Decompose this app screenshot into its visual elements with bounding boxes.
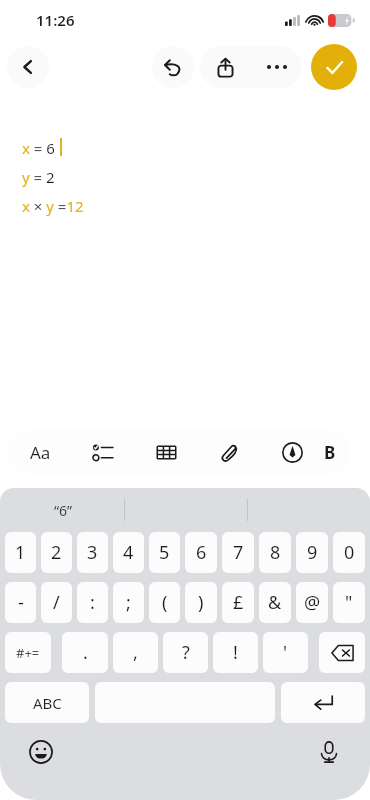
button[interactable]: ! (213, 632, 258, 673)
button[interactable]: Bold (324, 430, 350, 474)
button[interactable]: 0 (333, 532, 365, 573)
button[interactable]: Share (200, 46, 251, 88)
staticText: : (90, 590, 95, 615)
button[interactable]: , (113, 632, 158, 673)
staticText: 5 (159, 540, 170, 565)
staticText: “6” (54, 501, 73, 520)
staticText: ? (182, 640, 190, 665)
staticText: 9 (307, 540, 318, 565)
button[interactable]: Table (135, 430, 198, 474)
staticText: x = 6 (22, 138, 55, 158)
staticText: 3 (87, 540, 98, 565)
button[interactable]: Back (7, 46, 49, 88)
staticText: #+= (16, 644, 40, 662)
button[interactable]: & (259, 582, 291, 623)
staticText: 4 (123, 540, 134, 565)
button[interactable]: More options (251, 46, 302, 88)
staticText: / (53, 590, 60, 615)
button[interactable]: 3 (77, 532, 108, 573)
button[interactable]: 6 (185, 532, 217, 573)
staticText: ) (198, 590, 204, 615)
staticText: ! (233, 640, 238, 665)
staticText: y = 2 (22, 167, 55, 187)
button[interactable]: . (62, 632, 108, 673)
button[interactable]: 5 (149, 532, 180, 573)
button[interactable]: ; (113, 582, 144, 623)
button[interactable]: " (333, 582, 365, 623)
button[interactable]: Emoji (26, 737, 56, 767)
button[interactable]: ' (263, 632, 308, 673)
button[interactable]: ? (163, 632, 208, 673)
staticText: ; (126, 590, 131, 615)
staticText: 2 (51, 540, 62, 565)
button[interactable]: Attach (198, 430, 261, 474)
button[interactable]: - (5, 582, 36, 623)
button[interactable]: 2 (41, 532, 72, 573)
staticText: 0 (344, 540, 355, 565)
staticText: @ (304, 590, 321, 615)
button[interactable]: 4 (113, 532, 144, 573)
staticText: Aa (30, 441, 51, 464)
button[interactable]: Delete (319, 632, 365, 673)
staticText: & (268, 590, 282, 615)
staticText: B (324, 441, 336, 464)
staticText: £ (233, 590, 244, 615)
button[interactable]: Dictation (314, 737, 344, 767)
button[interactable]: 9 (296, 532, 328, 573)
button[interactable]: / (41, 582, 72, 623)
button[interactable]: Done (311, 44, 357, 90)
button[interactable]: £ (222, 582, 254, 623)
staticText: 11:26 (36, 10, 75, 30)
staticText: 6 (196, 540, 207, 565)
button[interactable]: Checklist (72, 430, 135, 474)
staticText: 8 (270, 540, 281, 565)
button[interactable]: : (77, 582, 108, 623)
button[interactable]: ( (149, 582, 180, 623)
staticText: - (18, 590, 24, 615)
button[interactable]: ) (185, 582, 217, 623)
button[interactable]: 7 (222, 532, 254, 573)
button[interactable]: @ (296, 582, 328, 623)
button[interactable]: Undo (152, 46, 194, 88)
button[interactable]: Return (281, 682, 365, 723)
button[interactable]: #+= (5, 632, 51, 673)
staticText: ABC (33, 693, 62, 713)
staticText: ' (283, 640, 288, 665)
staticText: x × y =12 (22, 196, 84, 216)
staticText: . (83, 640, 88, 665)
staticText: ( (162, 590, 168, 615)
staticText: 1 (15, 540, 26, 565)
button[interactable]: 8 (259, 532, 291, 573)
button[interactable]: Markup (261, 430, 324, 474)
staticText: , (133, 640, 138, 665)
staticText: 7 (233, 540, 244, 565)
button[interactable]: ABC (5, 682, 89, 723)
button[interactable]: 1 (5, 532, 36, 573)
button[interactable]: Text format (8, 430, 72, 474)
staticText: " (345, 590, 353, 615)
